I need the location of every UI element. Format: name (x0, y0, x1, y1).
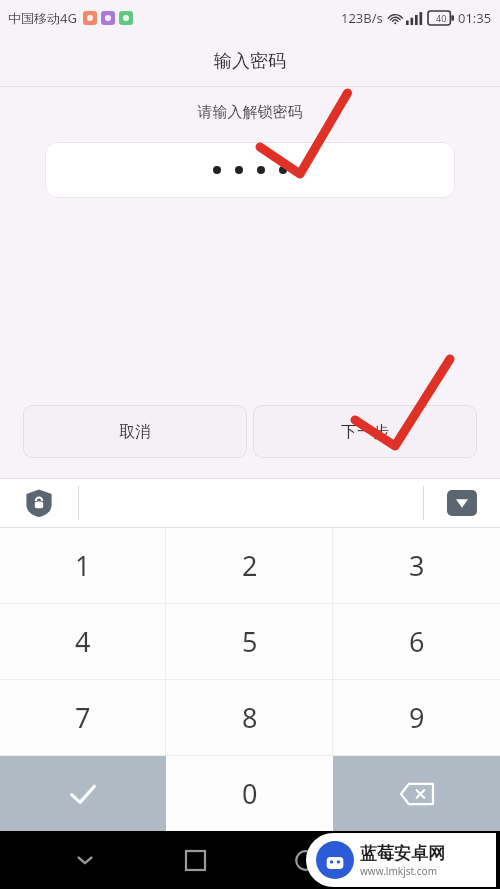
button[interactable]: Backspace (333, 756, 500, 831)
button[interactable]: Secure input (0, 478, 78, 528)
button[interactable]: Hide keyboard (424, 478, 500, 528)
staticText: 123B/s (341, 9, 383, 27)
staticText: 中国移动4G (8, 9, 77, 27)
button[interactable]: 下一步 (253, 405, 477, 458)
button[interactable]: 1 (0, 528, 166, 603)
button[interactable]: 0 (166, 756, 333, 831)
staticText: 7 (75, 699, 91, 736)
button[interactable]: 5 (166, 604, 333, 679)
button[interactable]: 3 (333, 528, 500, 603)
staticText: 取消 (119, 422, 151, 442)
staticText: www.lmkjst.com (360, 864, 437, 878)
staticText: 9 (409, 699, 425, 736)
staticText: 2 (242, 547, 258, 584)
staticText: 下一步 (341, 422, 389, 442)
staticText: 请输入解锁密码 (0, 103, 500, 122)
staticText: 8 (242, 699, 258, 736)
staticText: 蓝莓安卓网 (360, 843, 445, 864)
staticText: 01:35 (458, 9, 492, 27)
staticText: 4 (75, 623, 91, 660)
button[interactable]: 8 (166, 680, 333, 755)
button[interactable]: Back (30, 831, 140, 889)
button[interactable]: 取消 (23, 405, 247, 458)
button[interactable]: Recents (140, 831, 250, 889)
staticText: 3 (409, 547, 425, 584)
button[interactable]: 9 (333, 680, 500, 755)
button[interactable]: 7 (0, 680, 166, 755)
staticText: 0 (242, 775, 258, 812)
button[interactable]: Home (250, 831, 360, 889)
button[interactable] (45, 142, 455, 198)
staticText: 6 (409, 623, 425, 660)
staticText: 5 (242, 623, 258, 660)
button[interactable]: 4 (0, 604, 166, 679)
button[interactable]: 2 (166, 528, 333, 603)
staticText: 1 (75, 547, 91, 584)
staticText: 40 (436, 12, 447, 24)
staticText: 输入密码 (214, 50, 286, 73)
button[interactable]: Confirm (0, 756, 166, 831)
button[interactable]: 6 (333, 604, 500, 679)
